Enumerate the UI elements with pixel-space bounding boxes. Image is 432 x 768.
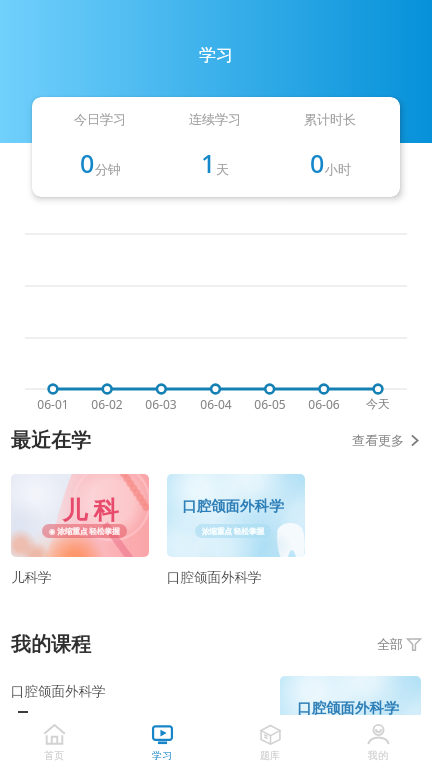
staticText: 学习 [152,749,172,762]
staticText: 连续学习 [189,111,241,127]
button[interactable]: 口腔颌面外科学 [0,672,432,768]
button[interactable]: 累计时长 [275,97,385,197]
staticText: 06-01 [37,396,69,412]
staticText: 分钟 [95,161,121,177]
staticText: 06-04 [200,396,232,412]
button[interactable]: 学习 [108,715,216,768]
staticText: 06-03 [145,396,177,412]
button[interactable]: 儿 科 [11,474,149,586]
staticText: 学习 [0,45,432,66]
button[interactable]: 我的 [324,715,432,768]
staticText: 今天 [366,396,390,411]
staticText: 1 [201,146,216,180]
button[interactable]: 今日学习 [45,97,155,197]
staticText: 浓缩重点 轻松掌握 [202,526,264,536]
button[interactable]: 全部 [365,630,432,658]
button[interactable]: 首页 [0,715,108,768]
staticText: 口腔颌面外科学 [167,569,262,586]
staticText: 我的课程 [11,632,91,657]
staticText: 06-05 [254,396,286,412]
staticText: 06-02 [91,396,123,412]
staticText: 题库 [260,749,280,762]
staticText: 累计时长 [304,111,356,127]
staticText: 口腔颌面外科学 [11,683,106,700]
staticText: 最近在学 [11,428,91,453]
staticText: 查看更多 [352,432,404,448]
button[interactable]: 口腔颌面外科学 [167,474,305,586]
staticText: 0 [80,146,95,180]
button[interactable]: 连续学习 [160,97,270,197]
staticText: 全部 [377,636,403,652]
staticText: 小时 [325,161,351,177]
staticText: 我的 [368,749,388,762]
staticText: 首页 [44,749,64,762]
staticText: ◉ 浓缩重点 轻松掌握 [49,526,120,536]
staticText: 口腔颌面外科学 [297,699,399,717]
staticText: 0 [310,146,325,180]
staticText: 口腔颌面外科学 [182,497,284,515]
staticText: 今日学习 [74,111,126,127]
staticText: 天 [216,161,229,177]
button[interactable]: 题库 [216,715,324,768]
staticText: 06-06 [308,396,340,412]
staticText: 儿 科 [62,492,119,526]
button[interactable]: 查看更多 [340,426,432,454]
staticText: 儿科学 [11,569,52,586]
